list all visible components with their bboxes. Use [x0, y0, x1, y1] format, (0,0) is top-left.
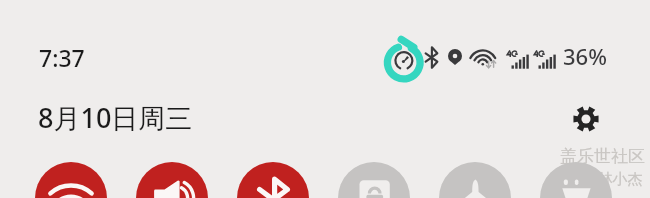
staticText: 8月10日周三 [38, 99, 193, 136]
staticText: @林小杰 [584, 168, 643, 188]
button[interactable]: Settings [569, 102, 603, 136]
button[interactable]: Airplane mode [439, 162, 511, 198]
staticText: 36% [563, 41, 607, 71]
button[interactable]: Bluetooth [237, 162, 309, 198]
button[interactable]: Wi-Fi [35, 162, 107, 198]
button[interactable]: Do not disturb [540, 162, 612, 198]
staticText: 7:37 [39, 42, 85, 73]
button[interactable]: Sound [136, 162, 208, 198]
staticText: 盖乐世社区 [560, 146, 645, 167]
button[interactable]: Auto rotate [338, 162, 410, 198]
